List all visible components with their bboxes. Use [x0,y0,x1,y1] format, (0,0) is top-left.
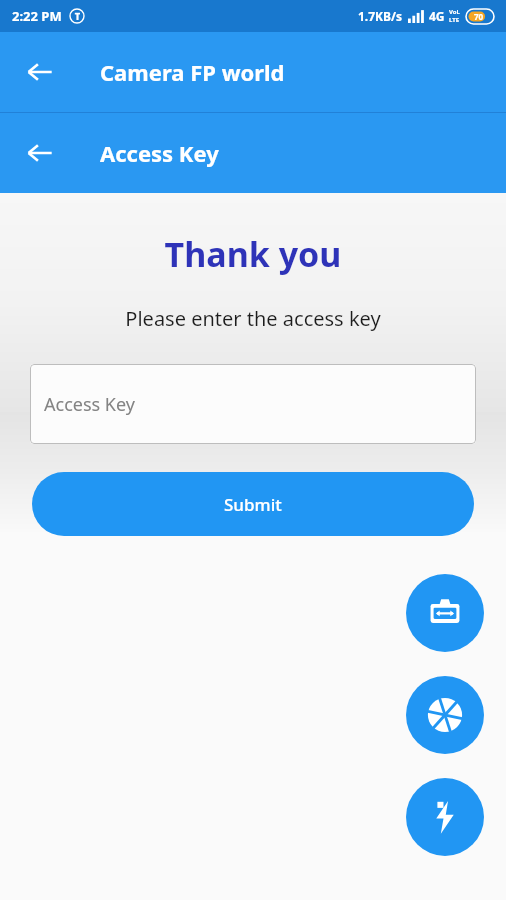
staticText: Access Key [44,392,135,417]
button[interactable]: Flash [406,778,484,856]
staticText: 2:22 PM [12,7,62,25]
button[interactable]: Access Key [30,364,476,444]
button[interactable]: Back [14,46,66,98]
button[interactable]: Submit [32,472,474,536]
button[interactable]: Shutter [406,676,484,754]
button[interactable]: Back [14,127,66,179]
staticText: VoL [449,8,460,16]
staticText: Camera FP world [100,57,285,87]
staticText: Submit [224,493,282,516]
staticText: LTE [449,16,460,24]
staticText: 4G [429,8,445,24]
staticText: Access Key [100,138,219,168]
staticText: 1.7KB/s [358,8,403,24]
staticText: Please enter the access key [0,305,506,332]
button[interactable]: Switch camera [406,574,484,652]
staticText: 70 [474,11,484,22]
staticText: Thank you [0,231,506,277]
